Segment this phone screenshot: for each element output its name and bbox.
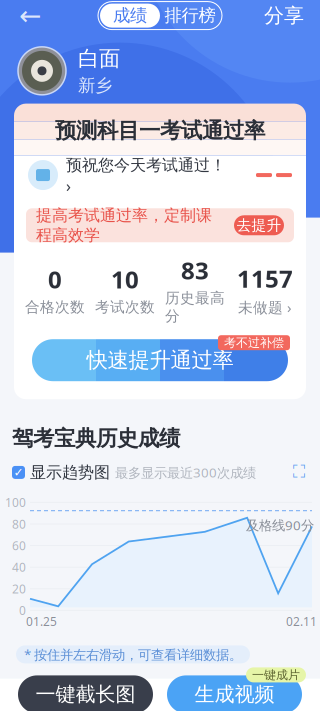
staticText: 80 [12, 516, 26, 532]
staticText: 0 [19, 602, 26, 618]
staticText: 60 [12, 538, 26, 553]
staticText: 40 [12, 559, 26, 575]
button[interactable]: 返回 [10, 0, 50, 34]
button[interactable]: 提高考试通过率，定制课程高效学 [26, 208, 294, 242]
staticText: 生成视频 [194, 682, 274, 707]
button[interactable]: 排行榜 [160, 4, 220, 28]
staticText: 一键成片 [252, 667, 300, 682]
staticText: 白面 [78, 46, 120, 72]
staticText: 历史最高分 [165, 289, 225, 325]
staticText: 最多显示最近300次成绩 [115, 463, 256, 481]
button[interactable]: ✓ [12, 463, 110, 482]
button[interactable]: 生成视频 [167, 675, 302, 711]
staticText: 及格线90分 [246, 516, 314, 534]
staticText: 去提升 [236, 216, 281, 234]
staticText: 1157 [237, 263, 293, 294]
staticText: 01.25 [26, 613, 57, 629]
button[interactable]: 快速提升通过率 [32, 339, 288, 381]
staticText: 新乡 [78, 75, 112, 96]
staticText: 合格次数 [25, 298, 85, 316]
staticText: 考试次数 [95, 298, 155, 316]
staticText: ⛶ [293, 464, 305, 481]
staticText: 预测科目一考试通过率 [55, 118, 265, 144]
staticText: 预祝您今天考试通过！ › [66, 154, 230, 196]
staticText: ✓ [13, 466, 23, 479]
button[interactable]: 全屏查看 [286, 459, 312, 485]
staticText: 排行榜 [164, 5, 215, 26]
staticText: 未做题 › [238, 297, 292, 317]
staticText: 02.11 [286, 613, 317, 629]
staticText: 考不过补偿 [224, 335, 284, 350]
staticText: 成绩 [113, 5, 147, 26]
staticText: * 按住并左右滑动，可查看详细数据。 [24, 645, 242, 663]
staticText: 100 [5, 494, 26, 510]
staticText: 10 [111, 263, 139, 295]
staticText: 一键截长图 [35, 682, 135, 707]
staticText: 驾考宝典历史成绩 [12, 425, 180, 451]
staticText: 83 [181, 254, 209, 286]
button[interactable]: 成绩 [100, 4, 160, 28]
staticText: 显示趋势图 [30, 463, 110, 482]
staticText: 提高考试通过率，定制课程高效学 [36, 206, 212, 245]
staticText: 快速提升通过率 [86, 347, 233, 373]
staticText: ← [19, 0, 41, 31]
staticText: 20 [12, 581, 26, 597]
button[interactable]: 一键截长图 [18, 675, 153, 711]
staticText: 0 [48, 263, 62, 295]
button[interactable]: 分享 [258, 0, 310, 34]
button[interactable]: * 按住并左右滑动，可查看详细数据。 [16, 645, 250, 663]
staticText: 分享 [264, 3, 304, 28]
